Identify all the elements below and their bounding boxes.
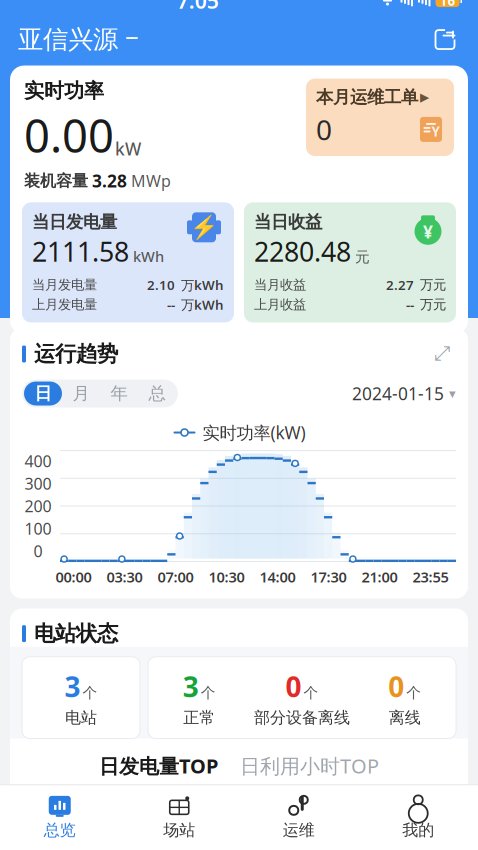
staticText: ⚡ — [190, 214, 218, 240]
button[interactable]: 2024-01-15 — [352, 378, 456, 409]
button[interactable]: 3 — [148, 657, 251, 738]
staticText: 200 — [24, 495, 51, 517]
staticText: 电站状态 — [34, 620, 118, 647]
staticText: 当月收益 — [254, 277, 306, 293]
button[interactable]: 本月运维工单 — [306, 79, 454, 156]
staticText: 00:00 — [55, 567, 91, 586]
button[interactable]: 0 — [251, 657, 353, 738]
staticText: 月 — [72, 383, 89, 404]
staticText: 正常 — [183, 708, 215, 728]
staticText: 703.86 — [348, 804, 408, 829]
staticText: ¥ — [423, 220, 433, 243]
staticText: 日利用小时TOP — [240, 753, 379, 779]
staticText: 14:00 — [259, 567, 295, 586]
staticText: 2111.58 — [32, 234, 129, 269]
staticText: 400 — [24, 450, 51, 472]
staticText: 0 — [316, 111, 332, 148]
staticText: 总 — [148, 383, 165, 404]
staticText: 2024-01-15 — [352, 382, 444, 405]
staticText: 7:05 — [177, 0, 219, 15]
staticText: Y — [431, 123, 439, 140]
staticText: kWh — [412, 806, 446, 827]
staticText: 总览 — [44, 820, 76, 840]
staticText: ▶ — [420, 90, 429, 104]
staticText: 3 — [183, 668, 199, 705]
staticText: 0 — [33, 540, 42, 562]
button[interactable]: 全屏 — [428, 340, 456, 368]
staticText: 17:30 — [310, 567, 346, 586]
staticText: 我的 — [402, 820, 434, 840]
staticText: 0.00 — [24, 105, 114, 165]
staticText: 当月发电量 — [32, 277, 97, 293]
staticText: 离线 — [389, 708, 421, 728]
staticText: 运行趋势 — [34, 341, 118, 367]
staticText: 10:30 — [208, 567, 244, 586]
button[interactable]: 年 — [100, 381, 138, 405]
staticText: 当日收益 — [254, 211, 322, 233]
staticText: 100 — [24, 518, 51, 539]
button[interactable]: 亚信兴源 — [16, 18, 141, 61]
staticText: 个 — [82, 684, 97, 702]
staticText: MWp — [131, 170, 171, 191]
staticText: 元 — [355, 248, 370, 266]
button[interactable]: 0 — [353, 657, 456, 738]
staticText: 电站 — [65, 708, 97, 728]
staticText: 个 — [201, 684, 216, 702]
button[interactable]: 分享 — [428, 23, 462, 57]
staticText: ▾ — [449, 386, 456, 401]
staticText: ⤢ — [434, 344, 450, 364]
staticText: 2.10 — [147, 276, 175, 294]
staticText: 3.28 — [92, 169, 127, 192]
button[interactable]: 日发电量TOP — [99, 753, 218, 788]
staticText: 2.27 — [386, 276, 414, 294]
button[interactable]: 我的 — [358, 791, 478, 842]
staticText: 个 — [303, 684, 318, 702]
staticText: 日 — [34, 383, 51, 404]
staticText: 万元 — [420, 296, 446, 313]
staticText: 个 — [406, 684, 421, 702]
staticText: 部分设备离线 — [254, 708, 350, 728]
button[interactable]: 月 — [62, 381, 100, 405]
button[interactable]: 总览 — [0, 791, 119, 842]
staticText: 年 — [110, 383, 127, 404]
staticText: 0 — [285, 668, 301, 705]
staticText: 当日发电量 — [32, 211, 117, 233]
staticText: -- — [167, 296, 175, 313]
button[interactable]: 日利用小时TOP — [240, 753, 379, 788]
staticText: 上月发电量 — [32, 296, 97, 313]
staticText: kW — [115, 137, 141, 160]
staticText: 兴源光伏站 — [62, 805, 157, 828]
staticText: 300 — [24, 473, 51, 494]
button[interactable]: 总 — [138, 381, 176, 405]
staticText: 实时功率 — [24, 79, 104, 103]
staticText: 运维 — [283, 820, 315, 840]
button[interactable]: 3 — [22, 657, 140, 738]
staticText: 万元 — [420, 277, 446, 293]
staticText: 万kWh — [181, 276, 224, 294]
button[interactable]: 1 — [10, 794, 468, 839]
staticText: 03:30 — [106, 567, 142, 586]
staticText: 日发电量TOP — [99, 753, 218, 779]
staticText: 实时功率(kW) — [202, 421, 305, 444]
staticText: 07:00 — [157, 567, 193, 586]
staticText: 16 — [439, 0, 455, 9]
staticText: 23:55 — [412, 567, 448, 586]
staticText: 本月运维工单 — [316, 87, 418, 108]
staticText: -- — [406, 296, 414, 313]
staticText: 亚信兴源 — [18, 24, 118, 55]
button[interactable]: 日 — [24, 381, 62, 405]
staticText: 装机容量 — [24, 171, 88, 191]
staticText: 2280.48 — [254, 234, 351, 269]
button[interactable]: 运维 — [239, 791, 358, 842]
staticText: kWh — [133, 247, 164, 266]
button[interactable]: 场站 — [119, 791, 239, 842]
staticText: 0 — [388, 668, 404, 705]
staticText: 万kWh — [181, 296, 224, 313]
staticText: 3 — [64, 668, 80, 705]
staticText: 场站 — [163, 820, 195, 840]
staticText: 上月收益 — [254, 296, 306, 313]
staticText: 21:00 — [361, 567, 397, 586]
